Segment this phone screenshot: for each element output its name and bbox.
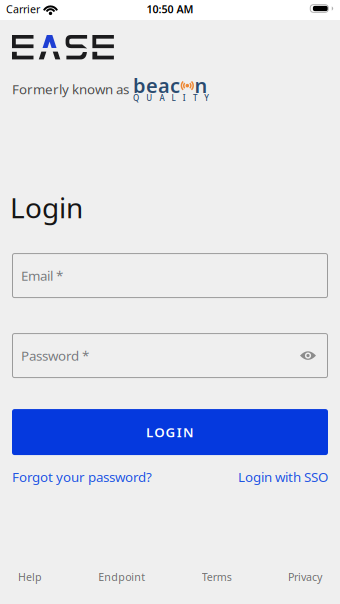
button[interactable]: Forgot your password?: [12, 468, 152, 486]
staticText: Password *: [21, 347, 89, 364]
staticText: Formerly known as: [12, 80, 129, 98]
staticText: Login: [10, 189, 83, 226]
staticText: G: [165, 423, 175, 441]
staticText: I: [183, 93, 186, 103]
button[interactable]: Login with SSO: [238, 468, 328, 486]
staticText: Y: [204, 93, 209, 103]
staticText: Login with SSO: [238, 468, 328, 486]
button[interactable]: Help: [18, 570, 42, 584]
staticText: L: [172, 93, 176, 103]
staticText: Privacy: [288, 570, 322, 584]
staticText: A: [159, 93, 164, 103]
button[interactable]: L: [12, 409, 328, 455]
button[interactable]: Password *: [12, 333, 328, 378]
staticText: beac: [133, 72, 180, 98]
staticText: T: [193, 93, 197, 103]
staticText: Q: [133, 93, 139, 103]
staticText: Endpoint: [98, 570, 145, 584]
button[interactable]: Show password: [300, 350, 316, 361]
staticText: N: [183, 423, 194, 441]
staticText: Email *: [21, 267, 63, 284]
staticText: Terms: [202, 570, 232, 584]
staticText: n: [195, 72, 208, 98]
staticText: Carrier: [6, 2, 40, 16]
staticText: O: [154, 423, 164, 441]
staticText: I: [177, 423, 182, 441]
staticText: Help: [18, 570, 42, 584]
button[interactable]: Endpoint: [98, 570, 145, 584]
button[interactable]: Privacy: [288, 570, 322, 584]
staticText: U: [146, 93, 152, 103]
button[interactable]: Email *: [12, 253, 328, 298]
staticText: L: [146, 423, 153, 441]
button[interactable]: Terms: [202, 570, 232, 584]
staticText: Forgot your password?: [12, 468, 152, 486]
staticText: 10:50 AM: [146, 2, 193, 16]
